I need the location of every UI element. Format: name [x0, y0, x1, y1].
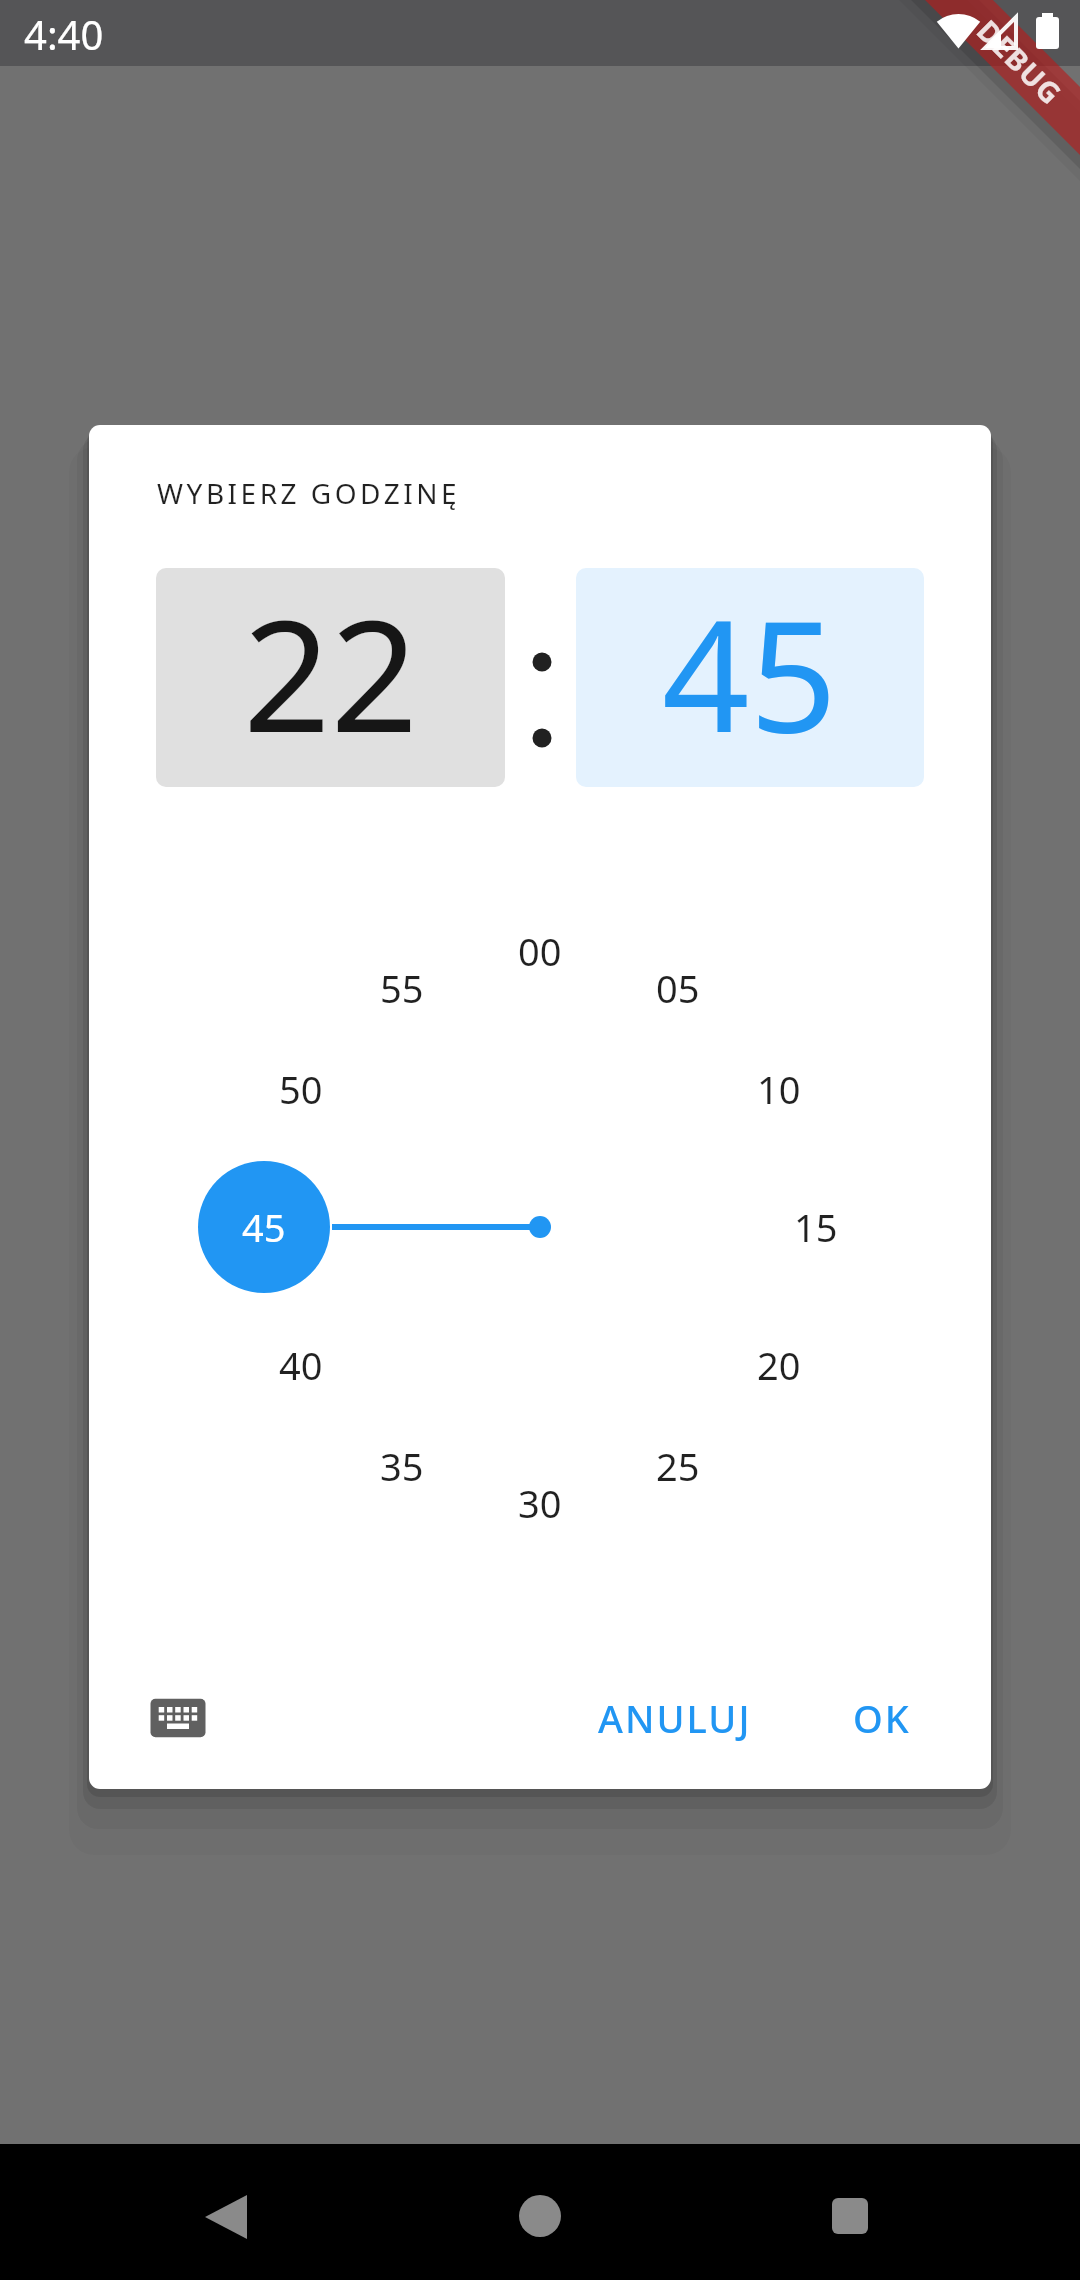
button[interactable]: 25 [633, 1431, 723, 1501]
staticText: 40 [279, 1339, 323, 1391]
button[interactable]: 20 [734, 1330, 824, 1400]
staticText: 35 [380, 1440, 424, 1492]
staticText: ANULUJ [598, 1692, 752, 1744]
button[interactable]: 45 [576, 568, 924, 787]
staticText: 30 [518, 1477, 562, 1529]
button[interactable]: 30 [495, 1468, 585, 1538]
staticText: 45 [662, 568, 838, 776]
button[interactable]: 15 [771, 1192, 861, 1262]
button[interactable]: 35 [357, 1431, 447, 1501]
button[interactable]: ANULUJ [586, 1680, 764, 1756]
button[interactable] [185, 2175, 265, 2255]
button[interactable]: 05 [633, 953, 723, 1023]
button[interactable] [810, 2175, 890, 2255]
button[interactable] [198, 1161, 330, 1293]
staticText: 4:40 [24, 7, 104, 61]
button[interactable]: 55 [357, 953, 447, 1023]
staticText: 50 [279, 1063, 323, 1115]
staticText: WYBIERZ GODZINĘ [157, 474, 461, 512]
button[interactable]: 45 [219, 1192, 309, 1262]
staticText: 55 [380, 962, 424, 1014]
staticText: 45 [242, 1201, 286, 1253]
staticText: 25 [656, 1440, 700, 1492]
button[interactable]: 22 [156, 568, 505, 787]
staticText: 10 [757, 1063, 801, 1115]
staticText: DEBUG [969, 11, 1071, 113]
button[interactable]: 10 [734, 1054, 824, 1124]
staticText: 15 [794, 1201, 838, 1253]
staticText: 05 [656, 962, 700, 1014]
staticText: 22 [243, 568, 419, 776]
button[interactable]: 40 [256, 1330, 346, 1400]
button[interactable] [500, 2175, 580, 2255]
button[interactable]: 50 [256, 1054, 346, 1124]
button[interactable]: 00 [495, 916, 585, 986]
staticText: 20 [757, 1339, 801, 1391]
button[interactable] [139, 1679, 217, 1757]
staticText: 00 [518, 925, 562, 977]
button[interactable]: OK [829, 1680, 934, 1756]
staticText: OK [853, 1692, 911, 1744]
